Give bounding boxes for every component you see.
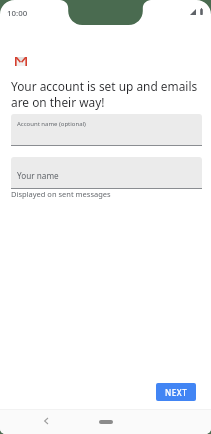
staticText: Account name (optional)	[17, 120, 86, 128]
staticText: NEXT	[165, 387, 188, 398]
button[interactable]: Your name	[11, 157, 202, 189]
staticText: Your account is set up and emails are on…	[11, 78, 203, 110]
staticText: Displayed on sent messages	[11, 189, 111, 199]
staticText: 10:00	[7, 8, 28, 19]
button[interactable]: Back	[37, 412, 55, 430]
button[interactable]: NEXT	[156, 383, 196, 401]
button[interactable]: Account name (optional)	[11, 114, 202, 146]
button[interactable]: Home	[99, 420, 113, 424]
staticText: Your name	[17, 170, 59, 181]
